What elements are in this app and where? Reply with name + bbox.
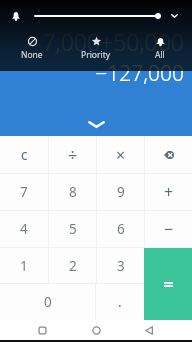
button[interactable]: 1 (0, 248, 48, 283)
button[interactable]: Priority (64, 31, 128, 65)
button[interactable]: 6 (97, 211, 144, 247)
staticText: 5 (69, 220, 77, 238)
staticText: 9 (117, 183, 125, 201)
button[interactable]: 8 (49, 174, 96, 210)
button[interactable]: 2 (49, 248, 96, 283)
button[interactable]: ÷ (49, 136, 96, 173)
staticText: − (164, 218, 174, 240)
staticText: 3 (117, 257, 125, 275)
staticText: c (21, 146, 28, 164)
staticText: 2 (69, 257, 77, 275)
staticText: + (164, 181, 174, 203)
staticText: Priority (81, 49, 111, 61)
staticText: 7,000+50,000 (42, 26, 184, 57)
button[interactable]: Equals (144, 248, 192, 320)
button[interactable]: c (0, 136, 48, 173)
button[interactable]: Expand volume (166, 8, 182, 24)
button[interactable]: 0 (0, 284, 95, 320)
staticText: . (118, 293, 122, 311)
button[interactable]: None (0, 31, 64, 65)
staticText: −127,000 (95, 59, 184, 88)
button[interactable]: All (128, 31, 192, 65)
staticText: None (21, 49, 43, 61)
button[interactable]: + (145, 174, 192, 210)
staticText: 6 (117, 220, 125, 238)
staticText: 0 (44, 293, 52, 311)
staticText: ÷ (68, 144, 78, 166)
staticText: 7 (20, 183, 28, 201)
button[interactable]: 9 (97, 174, 144, 210)
button[interactable]: 4 (0, 211, 48, 247)
button[interactable]: Backspace (145, 136, 192, 173)
button[interactable]: × (97, 136, 144, 173)
staticText: 4 (20, 220, 28, 238)
button[interactable]: Home (82, 320, 110, 340)
staticText: × (116, 144, 126, 166)
staticText: 8 (69, 183, 77, 201)
staticText: 1 (20, 257, 28, 275)
button[interactable]: 3 (97, 248, 144, 283)
button[interactable]: 5 (49, 211, 96, 247)
button[interactable]: 7 (0, 174, 48, 210)
button[interactable]: − (145, 211, 192, 247)
button[interactable]: Show history (79, 114, 113, 134)
button[interactable]: Back (135, 320, 163, 340)
staticText: All (155, 49, 165, 61)
button[interactable]: . (96, 284, 144, 320)
button[interactable]: Recents (28, 320, 56, 340)
